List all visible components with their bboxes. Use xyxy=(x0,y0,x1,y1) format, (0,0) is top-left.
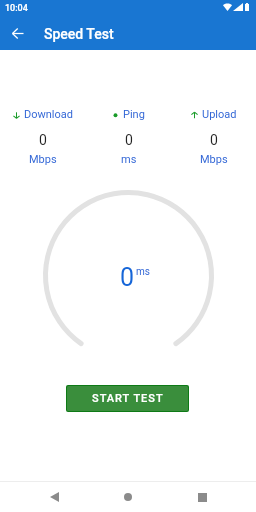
button[interactable]: START TEST xyxy=(67,386,188,411)
button[interactable]: Back xyxy=(12,16,24,50)
staticText: 0 xyxy=(210,132,218,148)
staticText: 10:04 xyxy=(5,3,28,14)
staticText: ms xyxy=(121,153,137,166)
staticText: 0 xyxy=(120,263,135,292)
button[interactable]: Home xyxy=(106,482,150,512)
staticText: Speed Test xyxy=(44,26,114,42)
staticText: START TEST xyxy=(92,392,164,405)
button[interactable]: Back xyxy=(32,482,76,512)
staticText: 0 xyxy=(125,132,133,148)
staticText: Upload xyxy=(202,108,237,121)
button[interactable]: Recent apps xyxy=(180,482,224,512)
staticText: ms xyxy=(136,266,150,278)
staticText: Download xyxy=(24,108,73,121)
staticText: Mbps xyxy=(29,153,57,166)
staticText: 0 xyxy=(39,132,47,148)
staticText: Mbps xyxy=(200,153,228,166)
staticText: Ping xyxy=(123,108,145,121)
